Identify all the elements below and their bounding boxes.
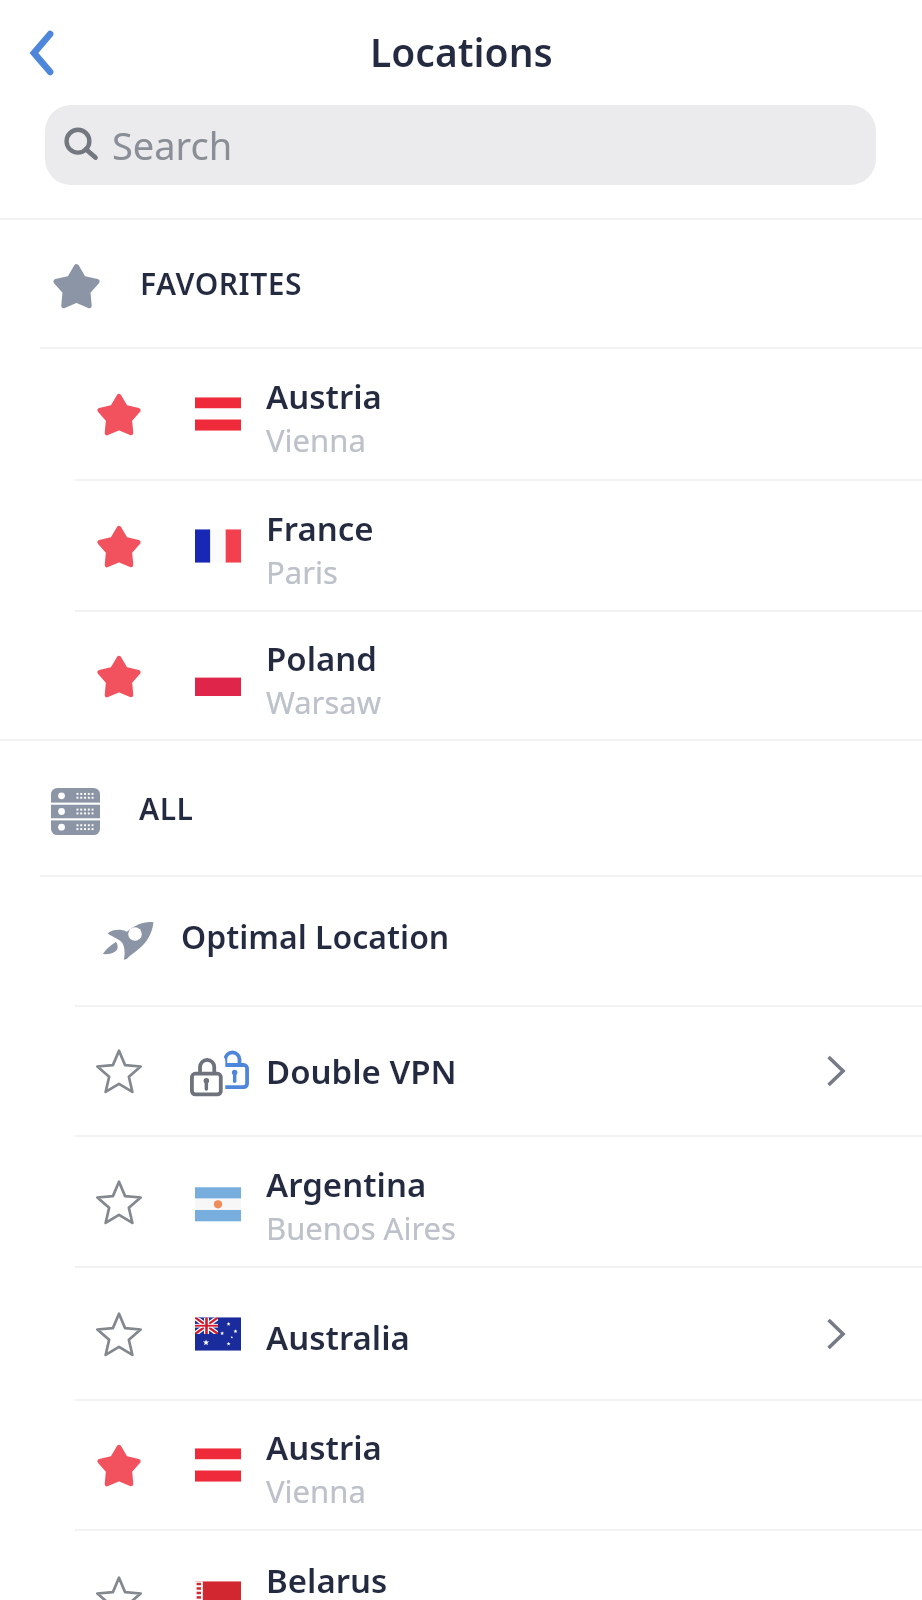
staticText: Search [112, 119, 233, 171]
button[interactable]: Favorite [0, 1137, 922, 1266]
button[interactable]: Favorite [96, 391, 142, 437]
button[interactable]: Favorite [96, 1179, 142, 1225]
staticText: Poland [266, 636, 378, 681]
staticText: FAVORITES [140, 263, 302, 304]
button[interactable]: Favorite [0, 349, 922, 479]
button[interactable]: FAVORITES [0, 220, 922, 347]
button[interactable]: Favorite [0, 1401, 922, 1529]
other: Open [814, 1312, 858, 1356]
staticText: Vienna [266, 1470, 366, 1512]
button[interactable]: Favorite [96, 1575, 142, 1600]
staticText: Austria [266, 374, 382, 419]
button[interactable]: Favorite [96, 1442, 142, 1488]
staticText: Vienna [266, 419, 366, 461]
button[interactable]: Favorite [0, 612, 922, 739]
staticText: France [266, 506, 374, 551]
button[interactable]: Favorite [0, 1007, 922, 1135]
staticText: Australia [266, 1315, 410, 1360]
other: Optimal [100, 918, 156, 974]
button[interactable]: Favorite [96, 1311, 142, 1357]
staticText: Belarus [266, 1558, 388, 1600]
button[interactable]: Favorite [0, 1268, 922, 1399]
staticText: Buenos Aires [266, 1207, 456, 1249]
button[interactable]: Favorite [96, 523, 142, 569]
staticText: Paris [266, 551, 338, 593]
staticText: Optimal Location [181, 915, 450, 959]
button[interactable]: ALL [0, 741, 922, 875]
button[interactable]: Favorite [0, 1533, 922, 1600]
staticText: Warsaw [266, 681, 382, 723]
button[interactable]: Back [12, 23, 72, 83]
staticText: Argentina [266, 1162, 427, 1207]
staticText: ALL [139, 788, 194, 829]
button[interactable]: Favorite [96, 653, 142, 699]
staticText: Austria [266, 1425, 382, 1470]
staticText: Locations [370, 25, 553, 78]
button[interactable]: Search [45, 105, 876, 185]
button[interactable]: Favorite [96, 1048, 142, 1094]
button[interactable]: Favorite [0, 481, 922, 610]
other: Open [814, 1049, 858, 1093]
staticText: Double VPN [266, 1049, 814, 1094]
button[interactable]: Optimal [0, 877, 922, 1005]
